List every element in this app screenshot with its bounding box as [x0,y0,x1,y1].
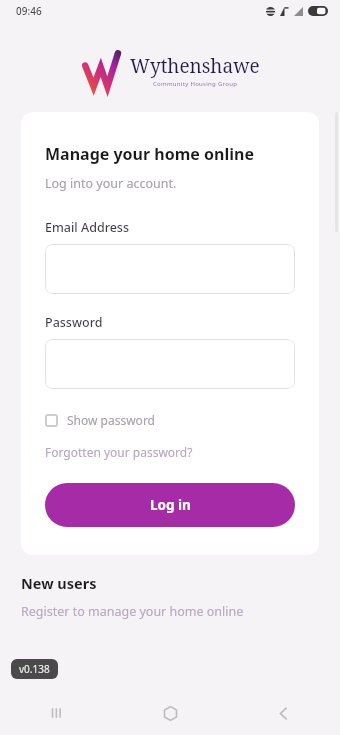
button[interactable]: Home [114,691,227,735]
staticText: Email Address [45,219,130,236]
staticText: v0.138 [19,662,50,676]
staticText: Show password [67,412,155,428]
button[interactable]: Recents [0,691,114,735]
button[interactable]: Forgotten your password? [45,444,193,460]
button[interactable] [45,339,295,389]
button[interactable]: Back [227,691,340,735]
button[interactable]: Show password [45,410,155,430]
staticText: Community Housing Group [153,80,238,88]
staticText: Wythenshawe [130,53,260,79]
button[interactable] [45,244,295,294]
staticText: Log into your account. [45,175,177,192]
staticText: Register to manage your home online [21,603,244,620]
staticText: Manage your home online [45,143,254,165]
staticText: 09:46 [16,4,42,18]
staticText: Password [45,314,103,331]
staticText: Log in [150,496,191,514]
staticText: New users [21,573,97,593]
button[interactable]: Log in [45,483,295,527]
